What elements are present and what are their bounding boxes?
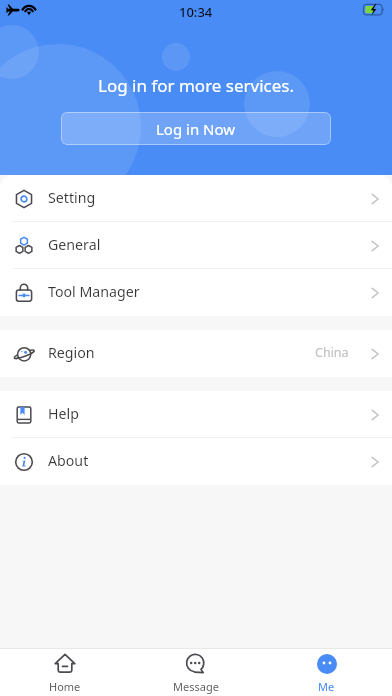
button[interactable]: Region (0, 330, 392, 377)
staticText: Help (48, 404, 79, 423)
button[interactable]: Log in Now (61, 112, 331, 145)
staticText: Log in for more services. (98, 74, 295, 97)
staticText: Setting (48, 188, 96, 207)
staticText: Region (48, 343, 95, 362)
button[interactable]: Me (261, 649, 392, 696)
button[interactable]: Home (0, 649, 130, 696)
staticText: Home (49, 679, 81, 694)
button[interactable]: Help (0, 391, 392, 438)
staticText: Message (173, 679, 219, 694)
staticText: Log in Now (156, 119, 236, 139)
button[interactable]: Setting (0, 175, 392, 222)
button[interactable]: About (0, 438, 392, 485)
button[interactable]: Tool Manager (0, 269, 392, 316)
staticText: About (48, 451, 89, 470)
staticText: China (315, 344, 349, 361)
staticText: 10:34 (179, 3, 213, 21)
staticText: Me (318, 679, 335, 694)
button[interactable]: Message (130, 649, 261, 696)
staticText: Tool Manager (48, 282, 140, 301)
staticText: General (48, 235, 101, 254)
button[interactable]: General (0, 222, 392, 269)
